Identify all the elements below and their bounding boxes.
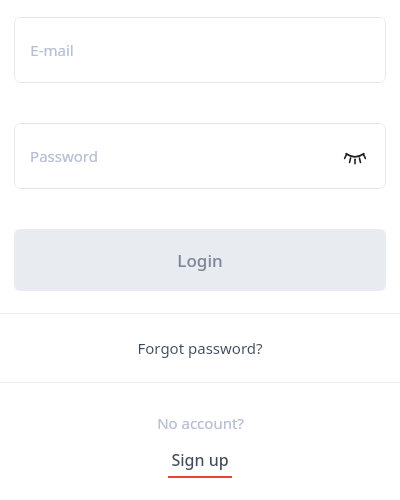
- staticText: Sign up: [171, 449, 229, 471]
- staticText: E-mail: [30, 40, 74, 60]
- button[interactable]: Show password: [338, 139, 372, 173]
- button[interactable]: Login: [14, 229, 386, 291]
- button[interactable]: Password: [14, 123, 386, 189]
- staticText: Login: [177, 249, 223, 272]
- button[interactable]: E-mail: [14, 17, 386, 83]
- staticText: Password: [30, 146, 98, 166]
- staticText: No account?: [157, 413, 244, 433]
- button[interactable]: Sign up: [164, 449, 236, 478]
- staticText: Forgot password?: [137, 338, 263, 358]
- button[interactable]: Forgot password?: [0, 314, 400, 382]
